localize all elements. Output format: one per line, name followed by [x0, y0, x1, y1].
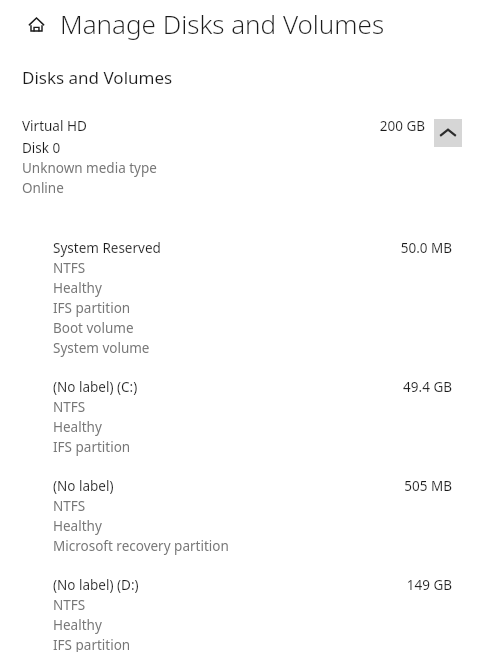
staticText: IFS partition [53, 636, 131, 652]
button[interactable]: (No label) [0, 477, 495, 555]
button[interactable]: (No label) (D:) [0, 576, 495, 652]
staticText: Manage Disks and Volumes [60, 6, 385, 41]
staticText: (No label) (D:) [53, 576, 139, 594]
staticText: (No label) [53, 477, 114, 495]
staticText: NTFS [53, 398, 86, 416]
button[interactable]: (No label) (C:) [0, 378, 495, 456]
staticText: 200 GB [345, 117, 425, 135]
staticText: Virtual HD [22, 117, 87, 135]
staticText: Healthy [53, 616, 102, 634]
staticText: 49.4 GB [372, 378, 452, 396]
staticText: Healthy [53, 517, 102, 535]
staticText: Online [22, 179, 64, 197]
staticText: Boot volume [53, 319, 134, 337]
button[interactable]: Home [18, 6, 54, 42]
staticText: Disks and Volumes [22, 66, 173, 89]
staticText: NTFS [53, 497, 86, 515]
staticText: Microsoft recovery partition [53, 537, 229, 555]
staticText: Healthy [53, 279, 102, 297]
staticText: Unknown media type [22, 159, 157, 177]
staticText: 505 MB [372, 477, 452, 495]
button[interactable]: Virtual HD [0, 117, 495, 197]
staticText: IFS partition [53, 438, 131, 456]
staticText: Healthy [53, 418, 102, 436]
staticText: System volume [53, 339, 150, 357]
staticText: IFS partition [53, 299, 131, 317]
button[interactable]: Collapse disk [434, 119, 462, 147]
staticText: NTFS [53, 259, 86, 277]
staticText: NTFS [53, 596, 86, 614]
staticText: 149 GB [372, 576, 452, 594]
staticText: Disk 0 [22, 139, 61, 157]
staticText: System Reserved [53, 239, 161, 257]
staticText: 50.0 MB [372, 239, 452, 257]
staticText: (No label) (C:) [53, 378, 138, 396]
button[interactable]: System Reserved [0, 239, 495, 357]
